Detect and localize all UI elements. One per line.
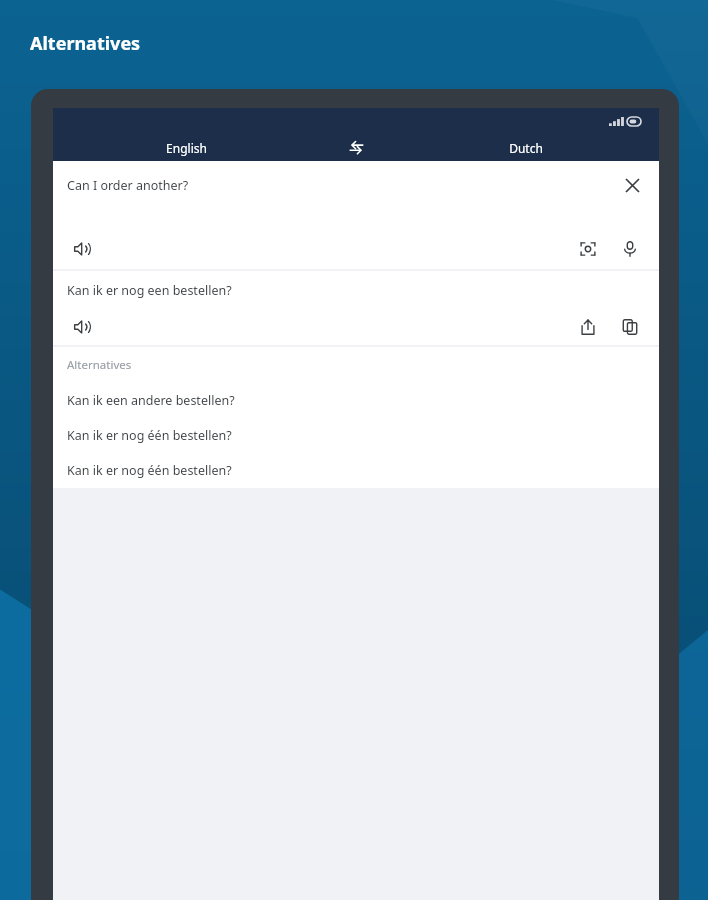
staticText: Can I order another? [67,177,615,194]
button[interactable]: Camera translate [571,232,605,266]
staticText: Alternatives [67,357,132,373]
staticText: Kan ik er nog één bestellen? [67,462,232,479]
button[interactable]: Kan ik een andere bestellen? [53,383,659,418]
button[interactable]: Voice input [613,232,647,266]
button[interactable]: Kan ik er nog één bestellen? [53,418,659,453]
button[interactable]: Listen [65,310,99,344]
staticText: English [166,140,207,156]
button[interactable]: Clear [615,168,649,202]
button[interactable]: Share [571,310,605,344]
staticText: Alternatives [30,31,141,56]
staticText: Kan ik er nog een bestellen? [67,282,232,299]
staticText: Kan ik er nog één bestellen? [67,427,232,444]
staticText: Dutch [509,140,543,156]
button[interactable]: Kan ik er nog één bestellen? [53,453,659,488]
button[interactable]: Dutch [392,134,659,161]
staticText: Kan ik een andere bestellen? [67,392,235,409]
button[interactable]: Listen [65,232,99,266]
button[interactable]: Copy [613,310,647,344]
button[interactable]: English [53,134,320,161]
button[interactable]: Swap languages [320,134,392,161]
